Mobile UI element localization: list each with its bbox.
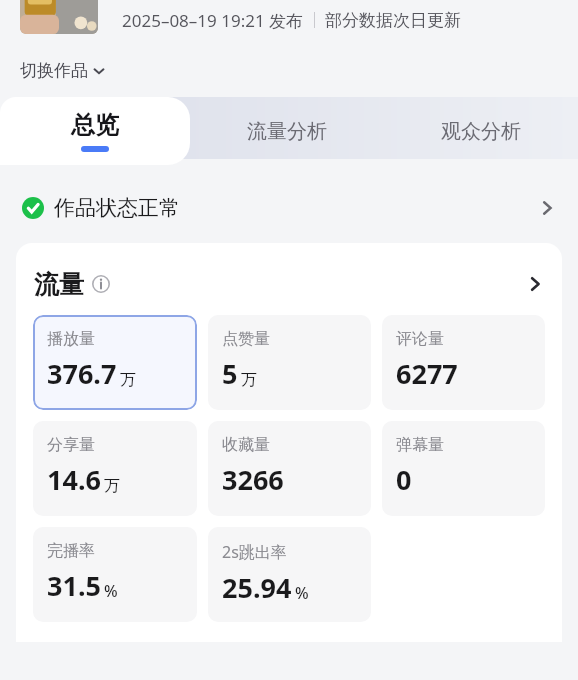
button[interactable]: 流量 <box>16 259 562 309</box>
button[interactable]: 流量分析 <box>190 100 384 162</box>
staticText: 切换作品 <box>20 60 88 81</box>
staticText: 5 <box>222 355 238 392</box>
staticText: 完播率 <box>47 541 95 561</box>
staticText: 作品状态正常 <box>54 195 180 221</box>
staticText: 万 <box>241 370 257 390</box>
button[interactable]: 切换作品 <box>18 58 108 83</box>
button[interactable]: 播放量 <box>33 315 197 410</box>
staticText: 部分数据次日更新 <box>325 10 461 31</box>
other: 说明 <box>92 275 110 293</box>
staticText: 评论量 <box>396 329 444 349</box>
other: 查看详情 <box>538 199 556 217</box>
staticText: 0 <box>396 461 412 498</box>
staticText: 万 <box>120 370 136 390</box>
staticText: 总览 <box>71 110 119 140</box>
staticText: 2s跳出率 <box>222 541 287 563</box>
button[interactable]: 完播率 <box>33 527 197 622</box>
button[interactable]: 总览 <box>0 97 190 165</box>
button[interactable]: 评论量 <box>382 315 545 410</box>
other: 查看详情 <box>526 275 544 293</box>
button[interactable]: 点赞量 <box>208 315 371 410</box>
staticText: 25.94 <box>222 569 292 606</box>
staticText: 分享量 <box>47 435 95 455</box>
staticText: 3266 <box>222 461 284 498</box>
button[interactable]: 2s跳出率 <box>208 527 371 622</box>
button[interactable]: 收藏量 <box>208 421 371 516</box>
staticText: 观众分析 <box>441 119 521 144</box>
staticText: 14.6 <box>47 461 101 498</box>
staticText: 点赞量 <box>222 329 270 349</box>
staticText: % <box>104 580 118 602</box>
button[interactable]: 观众分析 <box>384 100 578 162</box>
button[interactable]: 作品状态正常 <box>0 181 578 235</box>
staticText: 播放量 <box>47 329 95 349</box>
staticText: 31.5 <box>47 567 101 604</box>
button[interactable]: 分享量 <box>33 421 197 516</box>
button[interactable]: 作品封面 <box>20 0 98 34</box>
staticText: 万 <box>104 476 120 496</box>
staticText: % <box>295 582 309 604</box>
staticText: 流量 <box>34 269 84 300</box>
staticText: 流量分析 <box>247 119 327 144</box>
staticText: 6277 <box>396 355 458 392</box>
button[interactable]: 弹幕量 <box>382 421 545 516</box>
staticText: 2025–08–19 19:21 发布 <box>122 9 304 32</box>
staticText: 376.7 <box>47 355 117 392</box>
staticText: 弹幕量 <box>396 435 444 455</box>
staticText: 收藏量 <box>222 435 270 455</box>
